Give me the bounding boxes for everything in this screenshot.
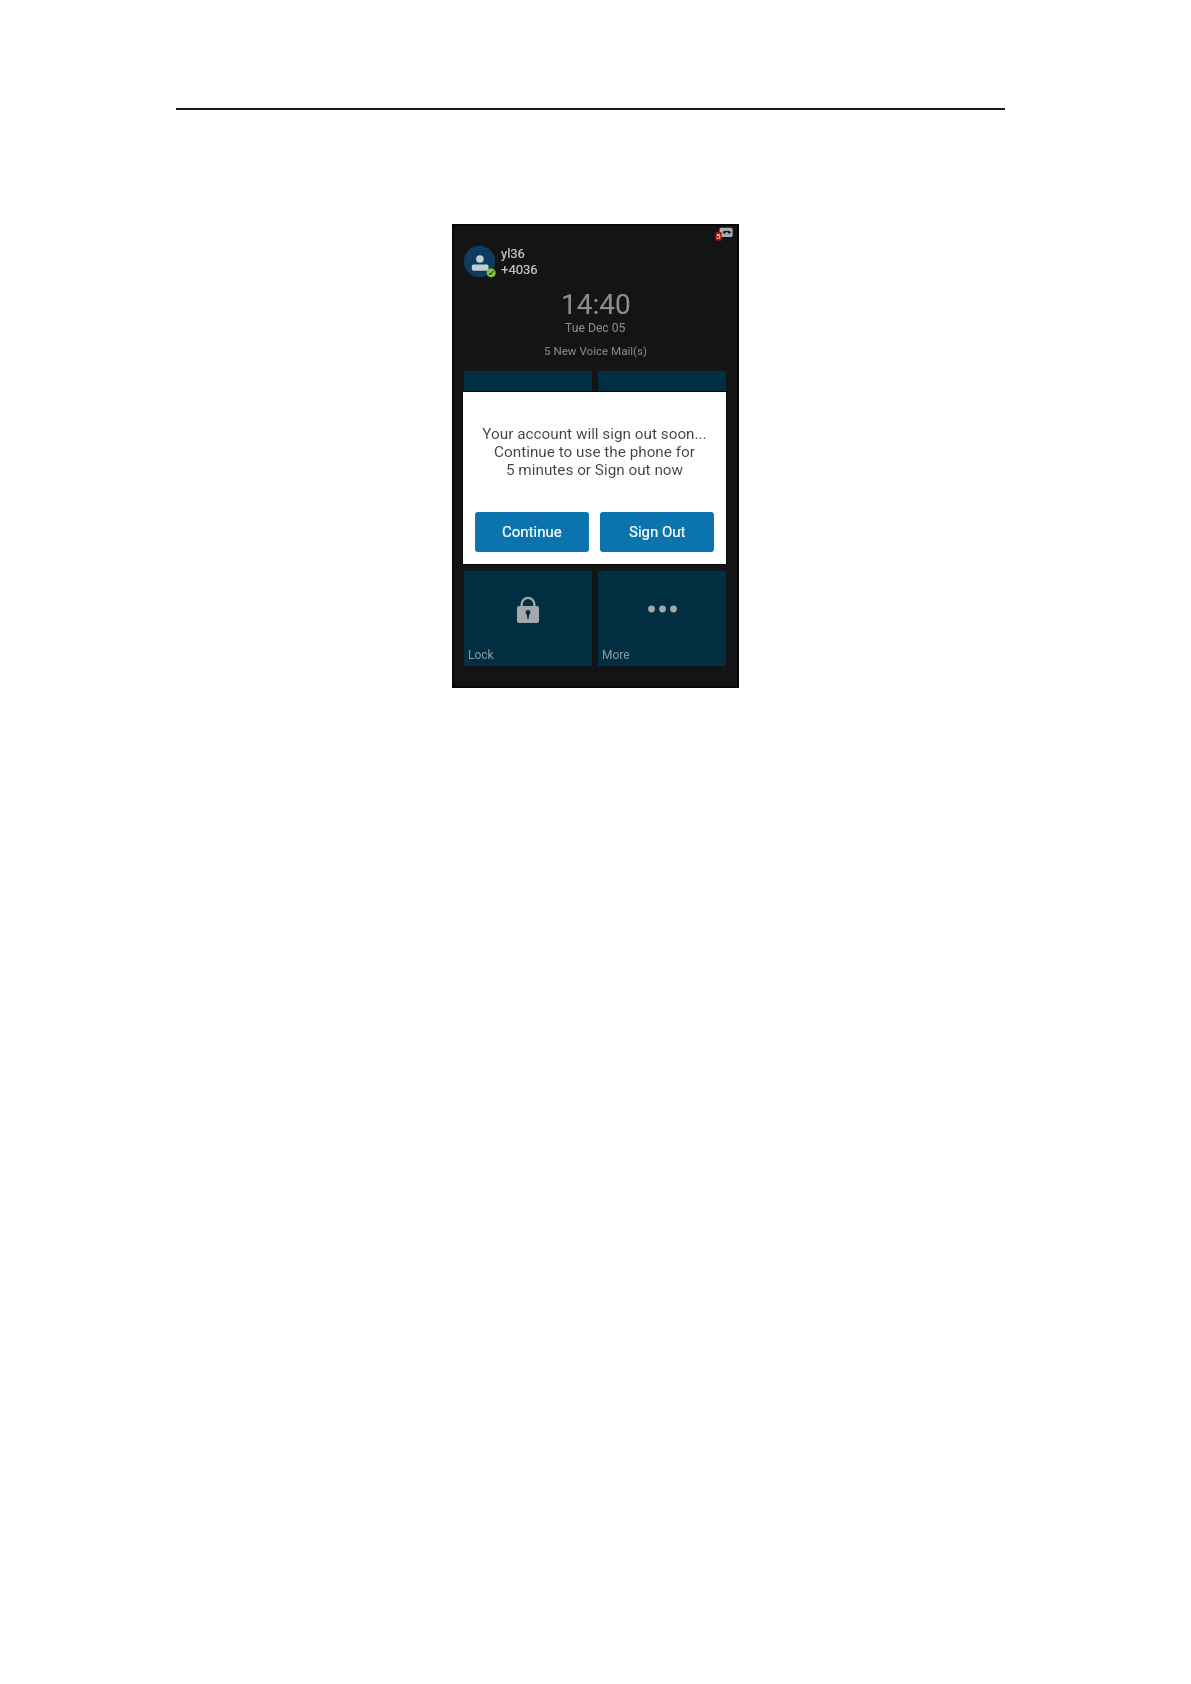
staticText: 5 New Voice Mail(s) (544, 344, 648, 358)
staticText: Sign Out (629, 523, 686, 541)
staticText: Lock (468, 648, 494, 662)
staticText: Continue (502, 523, 562, 541)
button[interactable]: Continue (475, 512, 589, 552)
button[interactable]: More (598, 571, 726, 666)
staticText: 14:40 (561, 288, 631, 321)
staticText: +4036 (501, 262, 538, 277)
button[interactable]: Voicemail notifications (713, 227, 735, 245)
button[interactable]: yl36 (463, 244, 591, 278)
staticText: 5 (716, 232, 721, 241)
button[interactable]: Voice Mail (464, 371, 592, 463)
button[interactable]: Lock (464, 571, 592, 666)
staticText: yl36 (501, 246, 525, 261)
staticText: Tue Dec 05 (565, 321, 626, 335)
button[interactable]: Directory (598, 371, 726, 463)
button[interactable]: Sign Out (600, 512, 714, 552)
staticText: Your account will sign out soon... Conti… (463, 425, 726, 479)
staticText: More (602, 648, 630, 662)
